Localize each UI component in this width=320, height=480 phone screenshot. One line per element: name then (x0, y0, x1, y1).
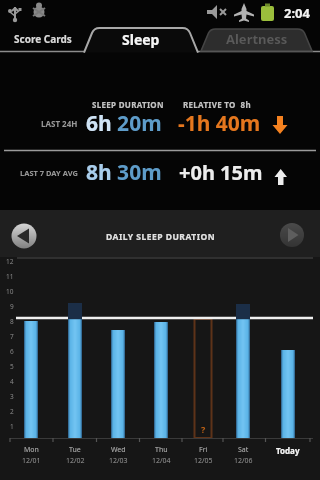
staticText: 4 (10, 377, 14, 386)
staticText: 11 (6, 272, 14, 281)
staticText: SLEEP DURATION (92, 99, 164, 110)
staticText: Score Cards (14, 32, 72, 46)
staticText: RELATIVE TO 8h (183, 99, 251, 110)
staticText: 6h 20m (86, 109, 162, 138)
staticText: DAILY SLEEP DURATION (106, 231, 216, 243)
staticText: 9 (10, 302, 14, 311)
button[interactable] (0, 25, 82, 53)
staticText: 12 (6, 257, 14, 266)
staticText: Mon (24, 445, 39, 455)
staticText: 12/06 (234, 456, 253, 466)
button[interactable] (279, 222, 305, 248)
staticText: Tue (69, 445, 81, 455)
button[interactable] (11, 223, 37, 249)
button[interactable] (200, 25, 314, 53)
staticText: LAST 7 DAY AVG (20, 168, 78, 178)
staticText: 6 (10, 347, 14, 356)
staticText: 3 (10, 392, 14, 401)
staticText: Wed (111, 445, 126, 455)
button[interactable] (84, 25, 198, 53)
staticText: 12/03 (109, 456, 128, 466)
staticText: 7 (10, 332, 14, 341)
staticText: 12/04 (152, 456, 171, 466)
staticText: Sleep (122, 30, 160, 49)
staticText: 8 (10, 317, 14, 326)
staticText: LAST 24H (41, 118, 78, 129)
staticText: 5 (10, 362, 14, 371)
staticText: 1 (10, 422, 14, 431)
staticText: Today (276, 445, 300, 456)
staticText: +0h 15m (179, 159, 263, 186)
staticText: 10 (6, 287, 14, 296)
staticText: 2 (10, 407, 14, 416)
staticText: Sat (238, 445, 249, 455)
staticText: 12/01 (22, 456, 41, 466)
staticText: Fri (199, 445, 208, 455)
staticText: -1h 40m (178, 109, 261, 138)
staticText: 8h 30m (86, 158, 162, 187)
staticText: 2:04 (284, 4, 310, 22)
staticText: ? (201, 423, 206, 435)
staticText: 12/02 (66, 456, 85, 466)
staticText: Thu (155, 445, 168, 455)
staticText: 12/05 (194, 456, 213, 466)
staticText: Alertness (226, 30, 288, 48)
